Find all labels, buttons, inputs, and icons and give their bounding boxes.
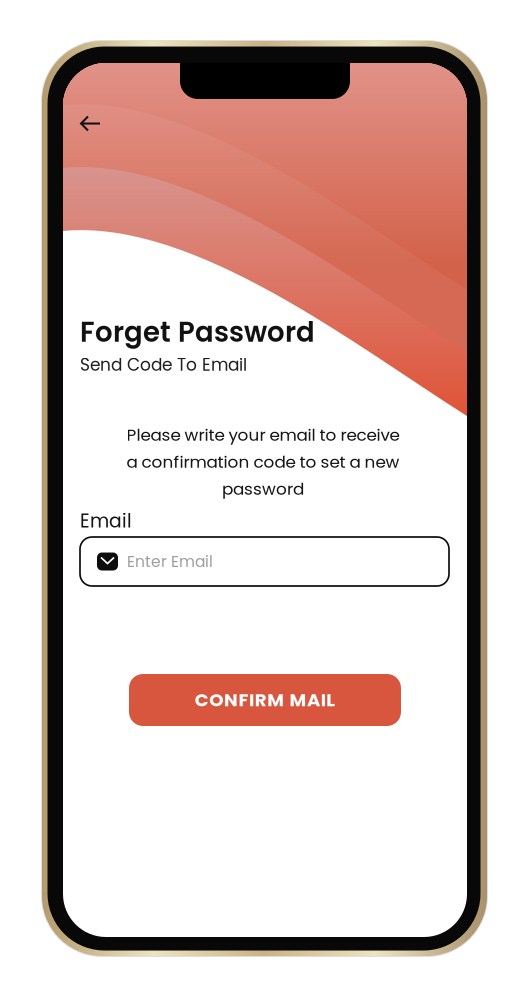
- staticText: CONFIRM MAIL: [195, 687, 335, 713]
- staticText: a confirmation code to set a new: [126, 450, 399, 473]
- staticText: Email: [80, 508, 132, 534]
- staticText: Please write your email to receive: [126, 423, 399, 446]
- staticText: password: [222, 477, 304, 500]
- button[interactable]: Back: [68, 103, 113, 144]
- staticText: Forget Password: [80, 313, 315, 351]
- button[interactable]: CONFIRM MAIL: [129, 674, 401, 726]
- staticText: Send Code To Email: [80, 353, 247, 377]
- staticText: Enter Email: [127, 551, 213, 572]
